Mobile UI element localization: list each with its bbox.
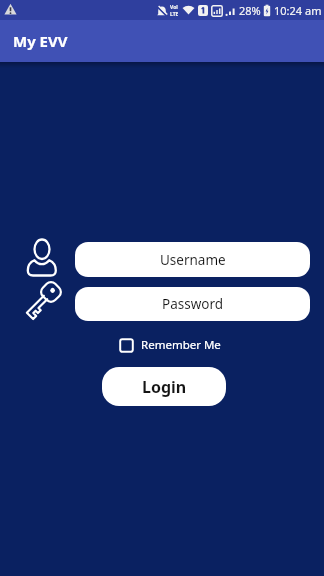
- staticText: My EVV: [13, 31, 68, 51]
- staticText: Password: [162, 295, 224, 313]
- staticText: 28%: [239, 3, 261, 18]
- staticText: 10:24 am: [274, 3, 322, 18]
- staticText: LTE: [170, 11, 179, 18]
- staticText: Login: [142, 376, 187, 398]
- staticText: Vol: [170, 4, 178, 11]
- staticText: Remember Me: [141, 337, 221, 353]
- staticText: Username: [160, 251, 226, 269]
